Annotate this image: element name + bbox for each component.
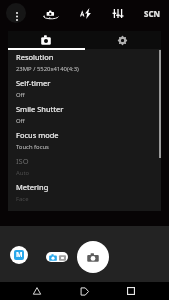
staticText: SCN xyxy=(144,8,161,19)
staticText: Metering xyxy=(16,182,49,192)
button[interactable]: Switch camera xyxy=(40,3,62,25)
button[interactable]: Photo settings tab xyxy=(8,31,84,49)
staticText: Self-timer xyxy=(16,78,51,88)
button[interactable]: Resolution xyxy=(8,49,161,75)
button[interactable]: Photo video switch xyxy=(46,252,68,262)
staticText: Resolution xyxy=(16,52,54,62)
button[interactable]: Self-timer xyxy=(8,75,161,101)
button[interactable]: Manual mode xyxy=(10,246,28,264)
button[interactable]: Flash auto xyxy=(74,2,96,24)
button[interactable]: SCN xyxy=(140,4,164,23)
staticText: Smile Shutter xyxy=(16,104,64,114)
staticText: Off xyxy=(16,117,25,125)
staticText: Focus mode xyxy=(16,130,59,140)
button[interactable]: Back xyxy=(27,282,47,300)
button[interactable]: Home xyxy=(74,282,94,300)
button[interactable]: Smile Shutter xyxy=(8,101,161,127)
button[interactable]: More options xyxy=(6,3,26,23)
button[interactable]: Focus mode xyxy=(8,127,161,153)
staticText: Off xyxy=(16,91,25,99)
button[interactable]: General settings tab xyxy=(84,31,161,49)
button[interactable]: Adjust settings xyxy=(107,2,129,24)
staticText: Auto xyxy=(16,169,30,177)
button[interactable]: Shutter xyxy=(77,241,109,273)
staticText: Face xyxy=(16,195,29,203)
staticText: Touch focus xyxy=(16,143,49,151)
staticText: 23MP / 5520x4140(4:3) xyxy=(16,65,79,73)
button[interactable]: ISO xyxy=(8,153,161,179)
staticText: M xyxy=(16,250,23,260)
staticText: ISO xyxy=(16,156,29,166)
button[interactable]: Metering xyxy=(8,179,161,205)
button[interactable]: Recent apps xyxy=(121,282,141,300)
